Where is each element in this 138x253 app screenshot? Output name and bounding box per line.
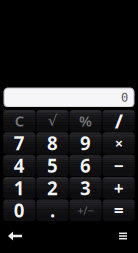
button[interactable]: = xyxy=(103,200,135,221)
staticText: 2 xyxy=(47,175,58,200)
button[interactable]: Back xyxy=(1,229,29,243)
button[interactable]: − xyxy=(103,155,135,176)
button[interactable]: C xyxy=(3,110,35,131)
staticText: 8 xyxy=(47,131,58,155)
button[interactable]: 3 xyxy=(69,177,102,199)
button[interactable]: √ xyxy=(36,110,68,131)
button[interactable]: Menu xyxy=(109,229,137,243)
button[interactable]: 9 xyxy=(69,132,102,154)
staticText: 0 xyxy=(14,198,25,223)
button[interactable]: 6 xyxy=(69,155,102,176)
staticText: 6 xyxy=(80,153,91,178)
staticText: = xyxy=(114,199,124,222)
staticText: × xyxy=(115,133,123,153)
staticText: 5 xyxy=(47,153,58,178)
staticText: / xyxy=(115,107,123,134)
button[interactable]: × xyxy=(103,132,135,154)
button[interactable]: 4 xyxy=(3,155,35,176)
button[interactable]: 0 xyxy=(3,200,35,221)
button[interactable]: / xyxy=(103,110,135,131)
button[interactable]: 8 xyxy=(36,132,68,154)
staticText: 4 xyxy=(14,153,25,178)
staticText: 7 xyxy=(14,131,25,155)
staticText: − xyxy=(114,154,124,177)
button[interactable]: 1 xyxy=(3,177,35,199)
button[interactable]: . xyxy=(36,200,68,221)
staticText: 1 xyxy=(14,175,25,200)
button[interactable]: +/− xyxy=(69,200,102,221)
staticText: . xyxy=(50,198,55,223)
staticText: % xyxy=(79,111,92,130)
staticText: 9 xyxy=(80,131,91,155)
button[interactable]: 5 xyxy=(36,155,68,176)
button[interactable]: + xyxy=(103,177,135,199)
staticText: + xyxy=(114,176,124,199)
staticText: √ xyxy=(48,112,57,129)
button[interactable]: 7 xyxy=(3,132,35,154)
staticText: 3 xyxy=(80,175,91,200)
staticText: +/− xyxy=(77,203,93,217)
button[interactable]: 2 xyxy=(36,177,68,199)
staticText: 0 xyxy=(121,91,128,104)
staticText: C xyxy=(15,111,24,130)
button[interactable]: % xyxy=(69,110,102,131)
